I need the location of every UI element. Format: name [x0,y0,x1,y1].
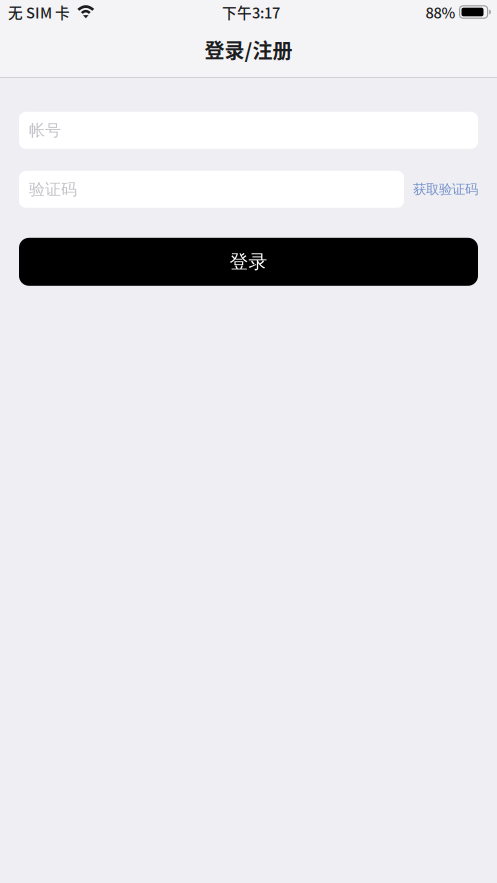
staticText: 帐号 [29,120,61,140]
staticText: 获取验证码 [413,181,478,197]
button[interactable]: 获取验证码 [404,171,478,208]
staticText: 验证码 [29,179,77,199]
staticText: 下午3:17 [222,1,280,23]
staticText: 登录/注册 [204,35,292,64]
button[interactable]: 登录 [19,238,478,286]
staticText: 无 SIM 卡 [8,1,70,23]
staticText: 登录 [229,250,267,273]
staticText: 88% [425,1,455,23]
